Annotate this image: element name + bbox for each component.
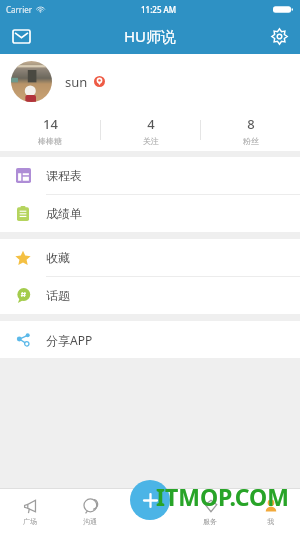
- button[interactable]: 我: [240, 488, 300, 533]
- staticText: 关注: [143, 136, 159, 146]
- staticText: ITMOP.COM: [156, 481, 289, 512]
- staticText: 话题: [46, 288, 70, 303]
- staticText: 课程表: [46, 168, 82, 183]
- staticText: 收藏: [46, 250, 70, 265]
- staticText: HU师说: [124, 26, 177, 46]
- button[interactable]: 4: [101, 109, 200, 151]
- staticText: 14: [43, 115, 58, 133]
- button[interactable]: 沟通: [60, 488, 120, 533]
- staticText: 4: [147, 115, 155, 133]
- button[interactable]: 成绩单: [0, 195, 300, 232]
- button[interactable]: 服务: [180, 488, 240, 533]
- button[interactable]: Settings: [265, 22, 293, 50]
- button[interactable]: Profile photo: [11, 54, 300, 109]
- button[interactable]: 14: [0, 109, 100, 151]
- button[interactable]: 话题: [0, 277, 300, 314]
- button[interactable]: 收藏: [0, 239, 300, 276]
- staticText: 8: [247, 115, 255, 133]
- staticText: 成绩单: [46, 206, 82, 221]
- button[interactable]: 课程表: [0, 157, 300, 194]
- button[interactable]: 分享APP: [0, 321, 300, 358]
- staticText: 服务: [203, 517, 217, 526]
- button[interactable]: Add: [130, 480, 170, 520]
- staticText: 广场: [23, 517, 37, 526]
- staticText: 我: [267, 517, 274, 526]
- button[interactable]: 8: [201, 109, 300, 151]
- staticText: 11:25 AM: [141, 4, 177, 15]
- staticText: 粉丝: [243, 136, 259, 146]
- button[interactable]: 广场: [0, 488, 60, 533]
- button[interactable]: Location badge: [94, 76, 105, 87]
- button[interactable]: Profile photo: [11, 61, 52, 102]
- staticText: 分享APP: [46, 332, 93, 348]
- button[interactable]: Messages: [7, 22, 35, 50]
- staticText: 棒棒糖: [38, 136, 62, 146]
- staticText: 沟通: [83, 517, 97, 526]
- staticText: Carrier: [6, 4, 33, 15]
- staticText: sun: [65, 73, 88, 91]
